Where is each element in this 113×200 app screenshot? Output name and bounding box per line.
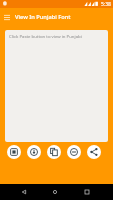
button[interactable]: Home [48, 185, 62, 199]
button[interactable]: Recents [80, 185, 94, 199]
button[interactable]: Back [17, 185, 31, 199]
button[interactable]: Paste [27, 145, 41, 159]
staticText: Click Paste button to view in Punjabi [9, 33, 82, 39]
button[interactable]: Stop [7, 145, 21, 159]
button[interactable]: Copy [47, 145, 61, 159]
button[interactable]: Menu [0, 10, 14, 24]
staticText: View In Punjabi Font [15, 13, 71, 21]
staticText: 5:38 [101, 1, 111, 8]
button[interactable]: Clear [67, 145, 81, 159]
button[interactable]: Share [87, 145, 101, 159]
